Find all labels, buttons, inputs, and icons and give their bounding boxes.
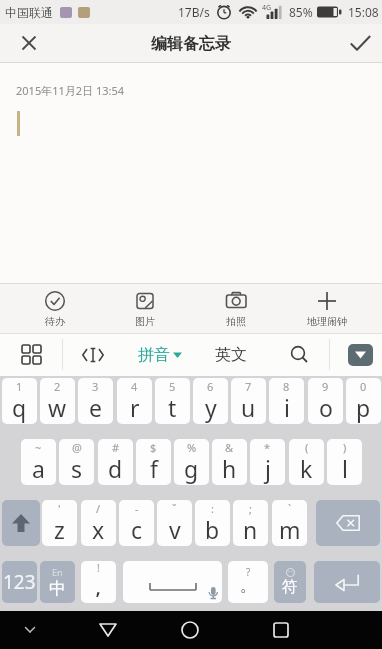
staticText: y xyxy=(205,392,217,423)
button[interactable]: ˇ xyxy=(157,500,192,546)
button[interactable]: 英文 xyxy=(205,333,257,376)
button[interactable]: - xyxy=(119,500,154,546)
button[interactable]: 5 xyxy=(155,378,190,424)
button[interactable]: 6 xyxy=(193,378,228,424)
button[interactable]: 1 xyxy=(2,378,37,424)
button[interactable] xyxy=(277,333,321,376)
staticText: 5 xyxy=(169,379,176,394)
button[interactable]: 9 xyxy=(308,378,343,424)
button[interactable]: 拍照 xyxy=(190,284,281,333)
staticText: ; xyxy=(249,501,252,516)
staticText: m xyxy=(279,514,301,545)
staticText: d xyxy=(108,453,123,484)
button[interactable]: ( xyxy=(289,439,324,485)
button[interactable]: * xyxy=(250,439,285,485)
staticText: ) xyxy=(343,440,347,455)
button[interactable] xyxy=(259,611,303,649)
staticText: 4G xyxy=(262,3,272,13)
button[interactable]: @ xyxy=(59,439,94,485)
staticText: t xyxy=(168,392,177,423)
staticText: b xyxy=(205,514,220,545)
staticText: 编辑备忘录 xyxy=(151,34,231,54)
staticText: r xyxy=(130,392,140,423)
button[interactable]: 拼音 xyxy=(138,333,182,376)
button[interactable]: ~ xyxy=(21,439,56,485)
button[interactable]: $ xyxy=(136,439,171,485)
staticText: c xyxy=(131,514,143,545)
staticText: o xyxy=(319,392,333,423)
staticText: 3 xyxy=(92,379,99,394)
staticText: 2015年11月2日 13:54 xyxy=(16,83,125,98)
staticText: e xyxy=(89,392,102,423)
button[interactable] xyxy=(168,611,212,649)
button[interactable]: En xyxy=(40,561,75,603)
button[interactable]: 123 xyxy=(2,561,37,603)
button[interactable] xyxy=(348,344,373,366)
button[interactable]: 7 xyxy=(231,378,266,424)
staticText: 2 xyxy=(54,379,61,394)
button[interactable]: 0 xyxy=(346,378,381,424)
staticText: @ xyxy=(72,440,82,455)
staticText: 拼音 xyxy=(138,345,170,365)
button[interactable]: 4 xyxy=(117,378,152,424)
button[interactable]: % xyxy=(174,439,209,485)
staticText: 7 xyxy=(245,379,252,394)
button[interactable]: 待办 xyxy=(10,284,100,333)
staticText: 中国联通 xyxy=(5,5,53,20)
staticText: 1 xyxy=(16,379,23,394)
button[interactable]: 2 xyxy=(40,378,75,424)
staticText: g xyxy=(184,453,199,484)
button[interactable]: ' xyxy=(42,500,77,546)
button[interactable]: ) xyxy=(327,439,362,485)
staticText: k xyxy=(300,453,313,484)
button[interactable]: 符 xyxy=(274,561,306,603)
button[interactable] xyxy=(338,24,382,62)
button[interactable] xyxy=(86,611,130,649)
staticText: 8 xyxy=(283,379,290,394)
button[interactable] xyxy=(123,561,222,603)
staticText: x xyxy=(92,514,105,545)
button[interactable] xyxy=(71,333,115,376)
staticText: 4 xyxy=(131,379,138,394)
staticText: 0 xyxy=(360,379,367,394)
button[interactable] xyxy=(9,333,53,376)
staticText: s xyxy=(71,453,83,484)
button[interactable]: 图片 xyxy=(100,284,190,333)
button[interactable]: # xyxy=(98,439,133,485)
button[interactable]: 3 xyxy=(78,378,113,424)
button[interactable]: 8 xyxy=(269,378,304,424)
staticText: 123 xyxy=(3,569,36,595)
staticText: 符 xyxy=(282,577,298,597)
button[interactable]: & xyxy=(212,439,247,485)
button[interactable] xyxy=(316,500,380,546)
staticText: 6 xyxy=(207,379,214,394)
button[interactable]: ? xyxy=(228,561,268,603)
staticText: f xyxy=(150,453,158,484)
button[interactable]: : xyxy=(195,500,230,546)
staticText: ~ xyxy=(35,440,42,455)
button[interactable]: ` xyxy=(272,500,307,546)
staticText: n xyxy=(243,514,258,545)
staticText: / xyxy=(96,501,101,516)
staticText: 图片 xyxy=(135,315,155,328)
button[interactable]: / xyxy=(81,500,116,546)
staticText: & xyxy=(225,440,234,455)
button[interactable] xyxy=(314,561,380,603)
button[interactable] xyxy=(2,500,40,546)
staticText: # xyxy=(112,440,120,455)
staticText: $ xyxy=(150,440,157,455)
staticText: v xyxy=(169,514,181,545)
staticText: l xyxy=(342,453,348,484)
staticText: ( xyxy=(305,440,309,455)
staticText: ` xyxy=(288,501,292,516)
staticText: ? xyxy=(246,565,251,579)
staticText: En xyxy=(52,566,63,578)
button[interactable]: ! xyxy=(81,561,116,603)
staticText: 15:08 xyxy=(348,4,379,20)
staticText: - xyxy=(135,501,139,516)
button[interactable]: ; xyxy=(233,500,268,546)
staticText: 。 xyxy=(240,575,257,596)
staticText: w xyxy=(48,392,67,423)
button[interactable] xyxy=(7,24,51,62)
button[interactable]: 地理闹钟 xyxy=(281,284,372,333)
